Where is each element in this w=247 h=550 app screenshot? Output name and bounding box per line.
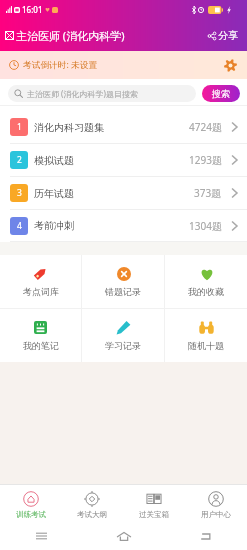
button[interactable]: 分享 [205, 24, 241, 47]
staticText: 搜索 [212, 88, 230, 99]
button[interactable]: 4 [0, 210, 247, 242]
button[interactable]: 训练考试 [0, 485, 61, 522]
button[interactable]: Back [165, 522, 247, 550]
staticText: 过关宝箱 [139, 510, 169, 519]
button[interactable]: 2 [0, 144, 247, 177]
button[interactable]: 我的收藏 [165, 255, 247, 308]
staticText: 训练考试 [16, 510, 46, 519]
button[interactable]: 用户中心 [185, 485, 247, 522]
staticText: 3 [17, 187, 22, 199]
button[interactable]: 过关宝箱 [123, 485, 185, 522]
staticText: 373题 [194, 186, 222, 200]
staticText: 考前冲刺 [34, 219, 74, 232]
staticText: 2 [17, 154, 22, 166]
staticText: 模拟试题 [34, 154, 74, 167]
staticText: 用户中心 [201, 510, 231, 519]
staticText: 随机十题 [188, 340, 224, 351]
button[interactable]: Recents [0, 522, 83, 550]
staticText: 主治医师 (消化内科学)题目搜索 [27, 88, 138, 99]
staticText: 16:01 [22, 4, 43, 15]
staticText: 考试倒计时: 未设置 [23, 59, 98, 71]
staticText: 我的笔记 [23, 340, 59, 351]
staticText: 1293题 [189, 153, 222, 167]
button[interactable]: 1 [0, 106, 247, 144]
button[interactable]: 学习记录 [82, 309, 164, 362]
button[interactable]: 考试大纲 [61, 485, 123, 522]
staticText: 考点词库 [23, 286, 59, 297]
button[interactable]: Home [83, 522, 165, 550]
staticText: 错题记录 [105, 286, 141, 297]
staticText: 主治医师 (消化内科学) [16, 28, 125, 43]
staticText: 分享 [218, 29, 238, 42]
button[interactable]: 错题记录 [82, 255, 164, 308]
staticText: 4 [17, 220, 22, 232]
staticText: 1 [17, 121, 22, 133]
button[interactable]: 设置 [221, 56, 239, 74]
staticText: 考试大纲 [77, 510, 107, 519]
button[interactable]: 3 [0, 177, 247, 210]
staticText: 消化内科习题集 [34, 121, 104, 134]
staticText: 1304题 [189, 219, 222, 233]
button[interactable]: 考点词库 [0, 255, 81, 308]
button[interactable]: 主治医师 (消化内科学)题目搜索 [8, 85, 196, 102]
button[interactable]: 我的笔记 [0, 309, 81, 362]
button[interactable]: 搜索 [202, 85, 240, 102]
staticText: 我的收藏 [188, 286, 224, 297]
staticText: 4724题 [189, 120, 222, 134]
staticText: 学习记录 [105, 340, 141, 351]
staticText: 历年试题 [34, 187, 74, 200]
button[interactable]: 随机十题 [165, 309, 247, 362]
